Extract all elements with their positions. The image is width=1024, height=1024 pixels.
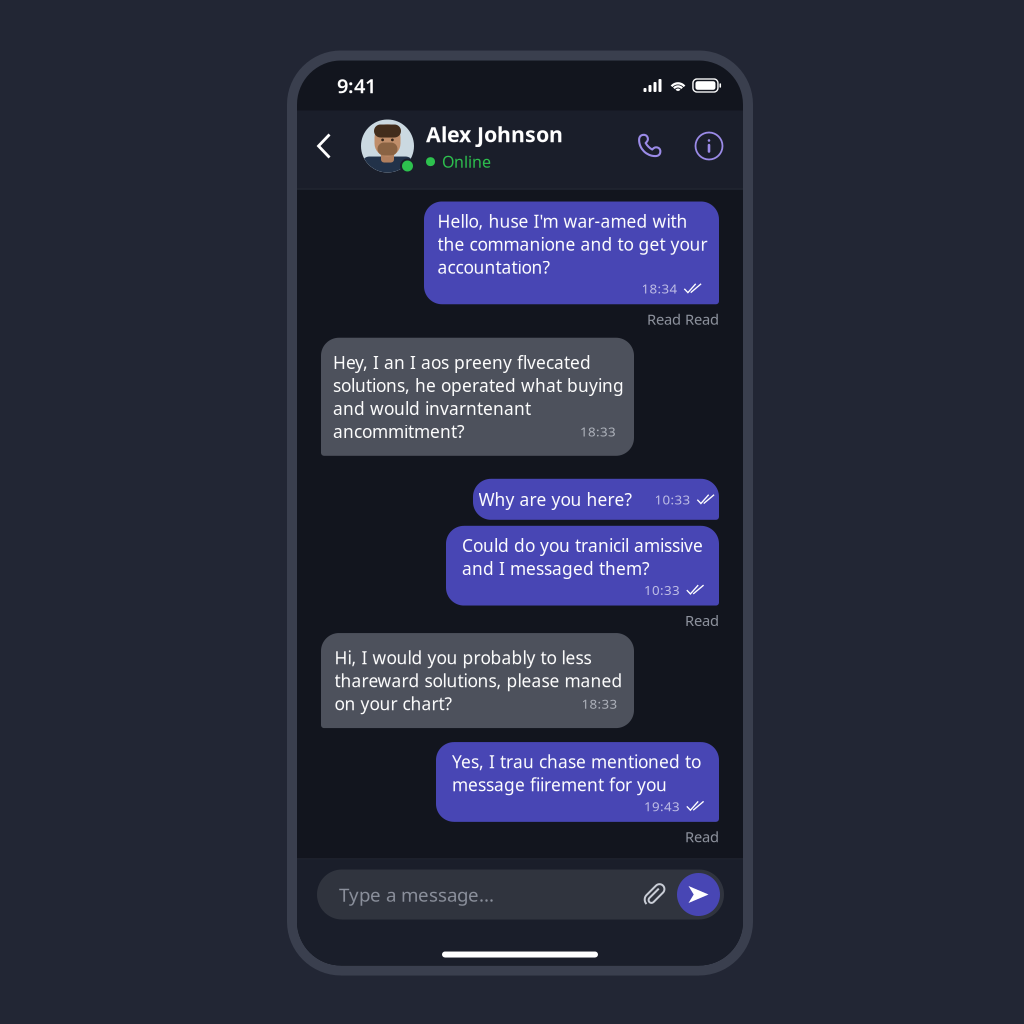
staticText: 10:33 bbox=[654, 490, 690, 508]
staticText: thareward solutions, please maned bbox=[334, 669, 622, 692]
staticText: 9:41 bbox=[337, 72, 376, 99]
staticText: Yes, I trau chase mentioned to bbox=[452, 750, 701, 773]
staticText: Could do you tranicil amissive bbox=[462, 534, 703, 557]
staticText: 18:33 bbox=[581, 695, 617, 712]
staticText: Read Read bbox=[647, 309, 719, 329]
staticText: Why are you here? bbox=[478, 488, 632, 511]
staticText: message fiirement for you bbox=[452, 773, 667, 796]
staticText: Type a message... bbox=[339, 882, 494, 907]
staticText: Alex Johnson bbox=[426, 120, 563, 148]
staticText: Hello, huse I'm war-amed with bbox=[437, 209, 687, 232]
staticText: the commanione and to get your bbox=[437, 232, 707, 255]
button[interactable]: Info bbox=[687, 120, 731, 172]
button[interactable]: Back bbox=[310, 120, 338, 172]
staticText: 18:33 bbox=[580, 422, 616, 440]
staticText: 10:33 bbox=[644, 581, 680, 599]
staticText: Online bbox=[442, 151, 491, 172]
staticText: 18:34 bbox=[641, 280, 677, 297]
staticText: Hey, I an I aos preeny flvecated bbox=[333, 351, 591, 374]
staticText: solutions, he operated what buying bbox=[333, 374, 624, 397]
staticText: Hi, I would you probably to less bbox=[334, 646, 591, 669]
button[interactable]: Call bbox=[628, 120, 672, 172]
staticText: and I messaged them? bbox=[462, 557, 650, 580]
staticText: Read bbox=[685, 611, 719, 630]
staticText: accountation? bbox=[437, 255, 550, 278]
button[interactable]: Send bbox=[677, 873, 720, 916]
staticText: ancommitment? bbox=[333, 420, 465, 443]
staticText: on your chart? bbox=[334, 692, 452, 715]
button[interactable]: Attach bbox=[638, 877, 672, 911]
staticText: 19:43 bbox=[644, 797, 680, 815]
staticText: and would invarntenant bbox=[333, 397, 531, 420]
staticText: Read bbox=[685, 827, 719, 846]
